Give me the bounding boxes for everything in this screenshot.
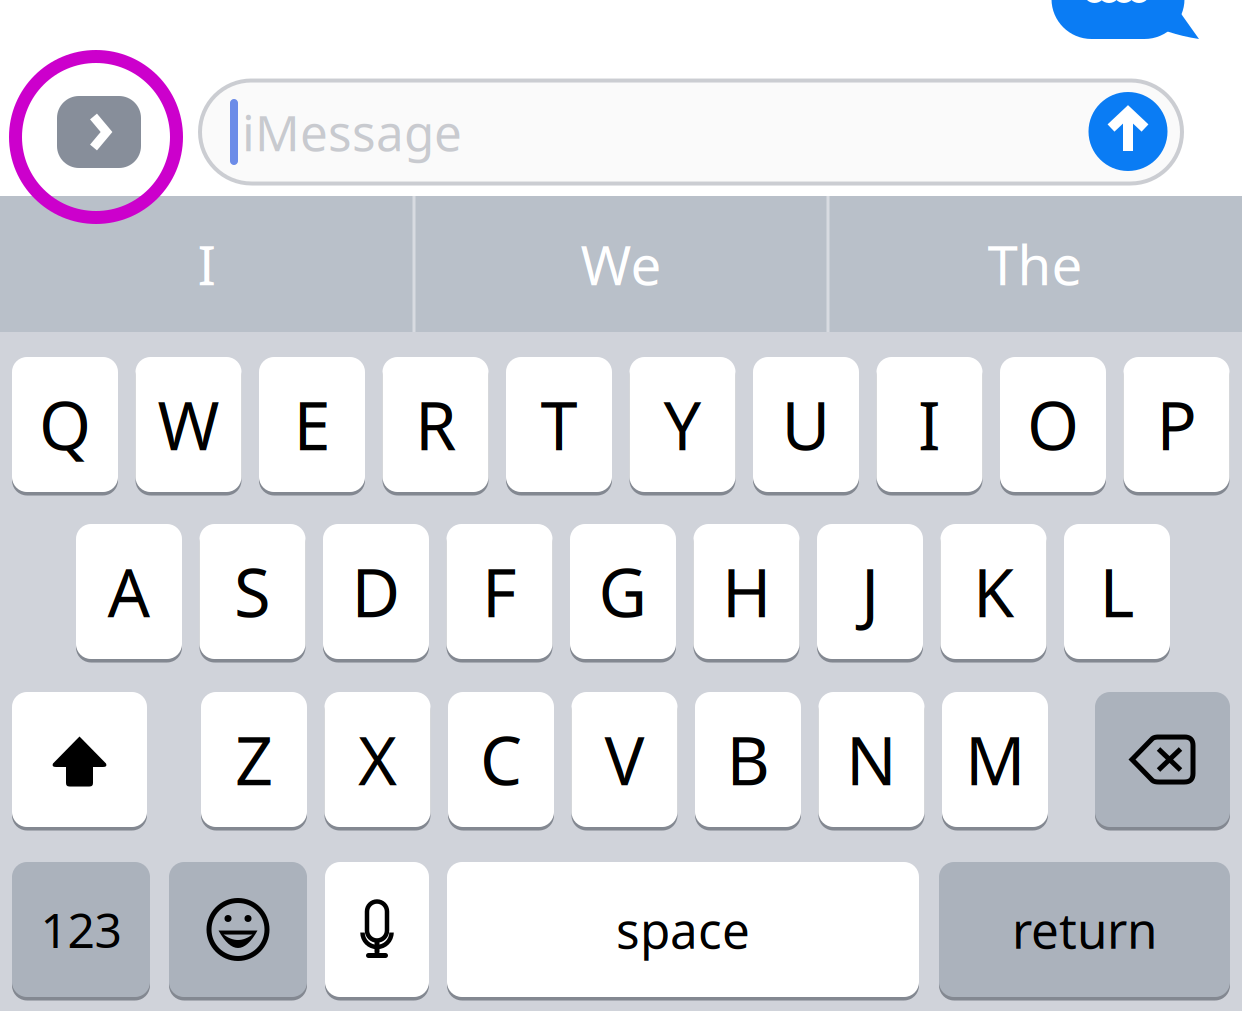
button[interactable]: E [259, 357, 365, 492]
button[interactable]: K [940, 524, 1046, 659]
staticText: 123 [40, 898, 121, 961]
button[interactable]: Z [201, 692, 307, 827]
staticText: Z [235, 715, 273, 804]
staticText: O [1027, 380, 1079, 469]
button[interactable]: R [382, 357, 488, 492]
button[interactable]: return [939, 862, 1230, 997]
button[interactable]: F [446, 524, 552, 659]
button[interactable]: J [817, 524, 923, 659]
staticText: R [415, 380, 456, 469]
button[interactable]: Delete [1095, 692, 1230, 827]
staticText: space [616, 897, 750, 962]
staticText: A [107, 547, 150, 636]
staticText: return [1012, 897, 1157, 962]
button[interactable]: P [1123, 357, 1229, 492]
staticText: H [722, 547, 771, 636]
button[interactable]: U [753, 357, 859, 492]
staticText: E [293, 380, 330, 469]
staticText: G [598, 547, 647, 636]
staticText: L [1099, 547, 1134, 636]
button[interactable]: Q [12, 357, 118, 492]
button[interactable]: B [695, 692, 801, 827]
button[interactable]: Message field [200, 80, 1182, 183]
staticText: C [480, 715, 522, 804]
staticText: J [861, 547, 879, 636]
staticText: I [197, 228, 216, 300]
staticText: The [987, 228, 1082, 300]
button[interactable]: Show app drawer [57, 96, 141, 168]
button[interactable]: Send [1088, 92, 1167, 171]
button[interactable]: H [693, 524, 799, 659]
staticText: T [540, 380, 577, 469]
button[interactable]: I [2, 196, 412, 332]
staticText: K [973, 547, 1014, 636]
staticText: X [358, 715, 397, 804]
button[interactable]: The [830, 196, 1240, 332]
staticText: iMessage [242, 99, 462, 165]
button[interactable]: D [323, 524, 429, 659]
staticText: U [781, 380, 830, 469]
button[interactable]: We [416, 196, 826, 332]
button[interactable]: M [942, 692, 1048, 827]
button[interactable]: T [506, 357, 612, 492]
staticText: W [157, 380, 219, 469]
staticText: Q [39, 380, 91, 469]
button[interactable]: space [447, 862, 919, 997]
staticText: D [351, 547, 400, 636]
button[interactable]: N [818, 692, 924, 827]
button[interactable]: L [1064, 524, 1170, 659]
button[interactable]: Y [629, 357, 735, 492]
button[interactable]: Dictation [325, 862, 429, 997]
button[interactable]: G [570, 524, 676, 659]
staticText: N [846, 715, 897, 804]
staticText: S [234, 547, 271, 636]
staticText: M [965, 715, 1025, 804]
button[interactable]: S [199, 524, 305, 659]
staticText: I [918, 380, 941, 469]
button[interactable]: A [76, 524, 182, 659]
staticText: Y [663, 380, 701, 469]
button[interactable]: V [571, 692, 677, 827]
button[interactable]: Shift [12, 692, 147, 827]
staticText: P [1156, 380, 1196, 469]
staticText: B [726, 715, 769, 804]
button[interactable]: Emoji [169, 862, 307, 997]
button[interactable]: Numbers [12, 862, 150, 997]
button[interactable]: O [1000, 357, 1106, 492]
staticText: We [580, 228, 661, 300]
button[interactable]: I [876, 357, 982, 492]
button[interactable]: X [324, 692, 430, 827]
staticText: F [482, 547, 517, 636]
button[interactable]: W [135, 357, 241, 492]
staticText: V [604, 715, 644, 804]
button[interactable]: C [448, 692, 554, 827]
